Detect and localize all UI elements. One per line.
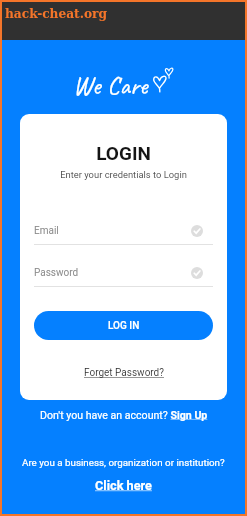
- button[interactable]: Forget Password?: [84, 367, 164, 379]
- staticText: Enter your credentials to Login: [34, 169, 213, 180]
- staticText: Password: [34, 267, 191, 279]
- staticText: Email: [34, 225, 191, 237]
- button[interactable]: Password: [34, 267, 213, 287]
- button[interactable]: Email: [34, 225, 213, 245]
- staticText: Are you a business, organization or inst…: [22, 457, 225, 468]
- staticText: LOGIN: [34, 142, 213, 164]
- button[interactable]: LOG IN: [34, 311, 213, 340]
- other: Password is valid: [191, 267, 203, 279]
- other: Email is valid: [191, 225, 203, 237]
- staticText: hack-cheat.org: [5, 7, 108, 21]
- button[interactable]: Click here: [95, 478, 152, 493]
- button[interactable]: Don't you have an account? Sign Up: [40, 409, 208, 421]
- staticText: LOG IN: [108, 320, 140, 332]
- staticText: We Care: [73, 69, 148, 102]
